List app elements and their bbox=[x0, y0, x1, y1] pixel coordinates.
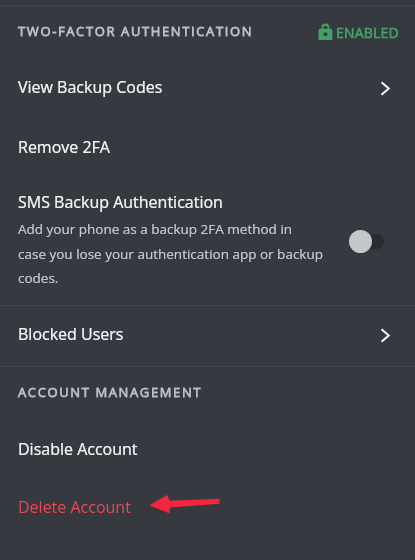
button[interactable]: SMS Backup Authentication bbox=[0, 187, 415, 299]
staticText: ENABLED bbox=[336, 23, 399, 41]
staticText: SMS Backup Authentication bbox=[18, 191, 223, 213]
staticText: View Backup Codes bbox=[18, 76, 163, 98]
button[interactable]: Delete Account bbox=[0, 493, 415, 521]
staticText: Disable Account bbox=[18, 438, 138, 460]
button[interactable]: ENABLED bbox=[318, 23, 399, 41]
button[interactable]: TWO-FACTOR AUTHENTICATION bbox=[0, 17, 415, 45]
staticText: Remove 2FA bbox=[18, 136, 110, 158]
staticText: TWO-FACTOR AUTHENTICATION bbox=[18, 22, 254, 40]
button[interactable]: Remove 2FA bbox=[0, 133, 415, 161]
button[interactable]: View Backup Codes bbox=[0, 73, 415, 101]
button[interactable]: Blocked Users bbox=[0, 320, 415, 348]
button[interactable]: ACCOUNT MANAGEMENT bbox=[0, 378, 415, 406]
button[interactable]: SMS Backup Authentication toggle bbox=[348, 228, 386, 254]
button[interactable]: Disable Account bbox=[0, 435, 415, 463]
staticText: Add your phone as a backup 2FA method in… bbox=[18, 220, 323, 287]
staticText: Blocked Users bbox=[18, 323, 124, 345]
staticText: Delete Account bbox=[18, 496, 131, 518]
staticText: ACCOUNT MANAGEMENT bbox=[18, 383, 203, 401]
